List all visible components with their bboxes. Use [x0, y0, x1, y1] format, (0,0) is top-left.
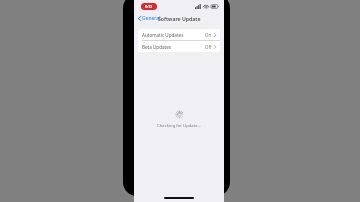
staticText: Automatic Updates: [142, 32, 184, 38]
staticText: Checking for Update...: [157, 123, 201, 129]
staticText: On: [205, 32, 212, 38]
staticText: 8:12: [145, 4, 153, 9]
staticText: Software Update: [158, 15, 201, 22]
button[interactable]: Automatic Updates: [138, 29, 220, 40]
button[interactable]: General: [134, 13, 165, 24]
button[interactable]: Beta Updates: [138, 41, 220, 52]
staticText: Off: [205, 44, 212, 50]
staticText: Beta Updates: [142, 44, 172, 50]
staticText: General: [142, 15, 161, 22]
